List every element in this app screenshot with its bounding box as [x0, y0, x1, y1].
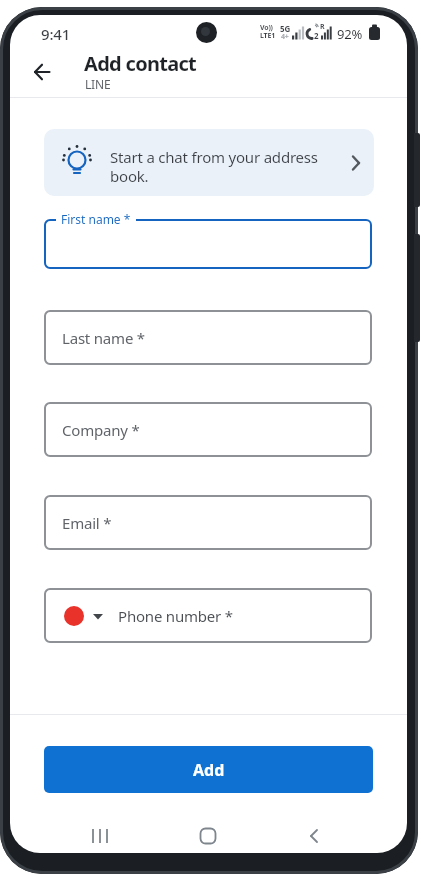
staticText: 92%	[337, 25, 363, 43]
staticText: 9:41	[41, 24, 71, 44]
staticText: Add contact	[84, 50, 197, 77]
staticText: Start a chat from your address	[110, 147, 318, 167]
staticText: Phone number *	[118, 606, 233, 626]
staticText: Add	[193, 759, 225, 781]
staticText: 4+	[281, 32, 289, 42]
button[interactable]	[22, 54, 58, 90]
button[interactable]: Last name *	[44, 310, 372, 365]
button[interactable]: Phone number *	[44, 588, 372, 643]
staticText: Last name *	[62, 328, 145, 348]
button[interactable]	[290, 812, 338, 860]
staticText: Vo))	[260, 23, 273, 33]
staticText: LINE	[85, 76, 111, 92]
staticText: First name *	[61, 211, 131, 227]
button[interactable]: Email *	[44, 495, 372, 550]
staticText: LTE1	[260, 31, 275, 41]
staticText: 2	[314, 30, 319, 41]
staticText: book.	[110, 166, 149, 186]
staticText: Email *	[62, 513, 112, 533]
button[interactable]: Company *	[44, 402, 372, 457]
staticText: 5G	[280, 23, 290, 34]
button[interactable]: Start a chat from your address	[44, 129, 374, 196]
staticText: R	[320, 22, 325, 32]
button[interactable]	[44, 219, 372, 269]
button[interactable]	[76, 812, 124, 860]
button[interactable]	[184, 812, 232, 860]
button[interactable]: Add	[44, 746, 373, 793]
staticText: Company *	[62, 420, 140, 440]
